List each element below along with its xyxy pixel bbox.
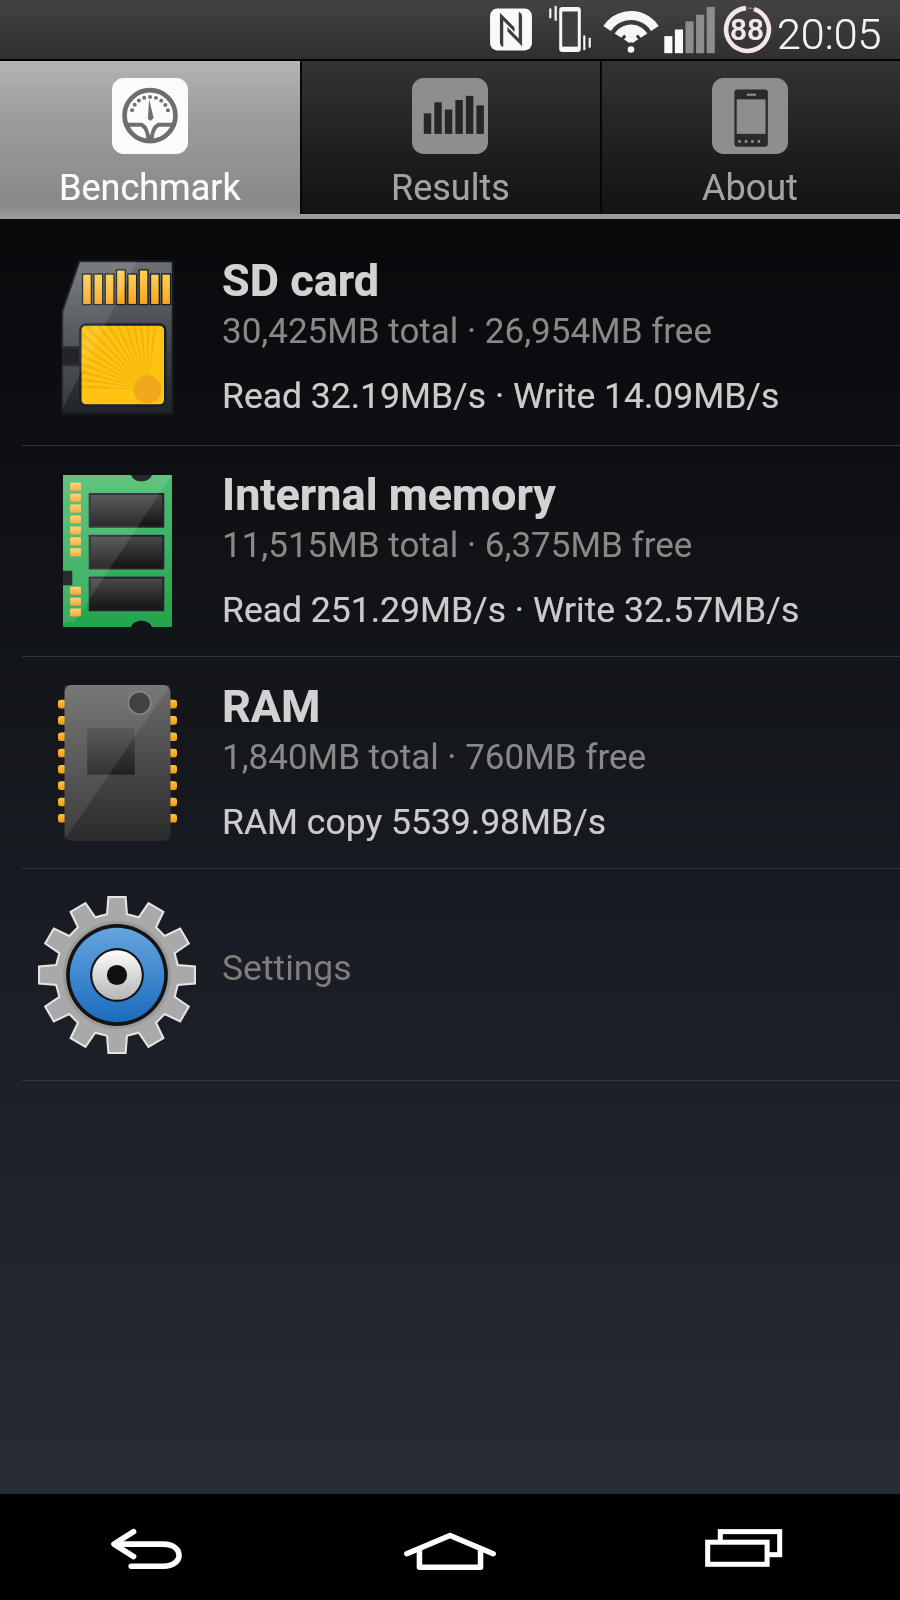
- staticText: SD card: [222, 254, 380, 307]
- button[interactable]: Internal memory: [0, 446, 900, 656]
- staticText: Internal memory: [222, 468, 556, 521]
- staticText: Results: [391, 167, 510, 209]
- button[interactable]: Results: [300, 61, 600, 219]
- staticText: 30,425MB total · 26,954MB free: [222, 311, 712, 352]
- staticText: 11,515MB total · 6,375MB free: [222, 525, 693, 566]
- staticText: RAM: [222, 680, 321, 733]
- staticText: 1,840MB total · 760MB free: [222, 737, 647, 778]
- staticText: RAM copy 5539.98MB/s: [222, 801, 607, 843]
- button[interactable]: Recent apps: [600, 1494, 900, 1600]
- button[interactable]: Back: [0, 1494, 300, 1600]
- staticText: 20:05: [777, 9, 882, 59]
- staticText: Read 251.29MB/s · Write 32.57MB/s: [222, 589, 800, 631]
- staticText: About: [702, 167, 798, 209]
- staticText: Settings: [222, 947, 352, 989]
- button[interactable]: SD card: [0, 219, 900, 445]
- staticText: Read 32.19MB/s · Write 14.09MB/s: [222, 375, 780, 417]
- button[interactable]: Settings: [0, 869, 900, 1080]
- button[interactable]: Home: [300, 1494, 600, 1600]
- button[interactable]: Benchmark: [0, 61, 300, 219]
- staticText: Benchmark: [59, 167, 241, 209]
- button[interactable]: RAM: [0, 657, 900, 868]
- button[interactable]: About: [600, 61, 900, 219]
- staticText: 88: [730, 12, 765, 46]
